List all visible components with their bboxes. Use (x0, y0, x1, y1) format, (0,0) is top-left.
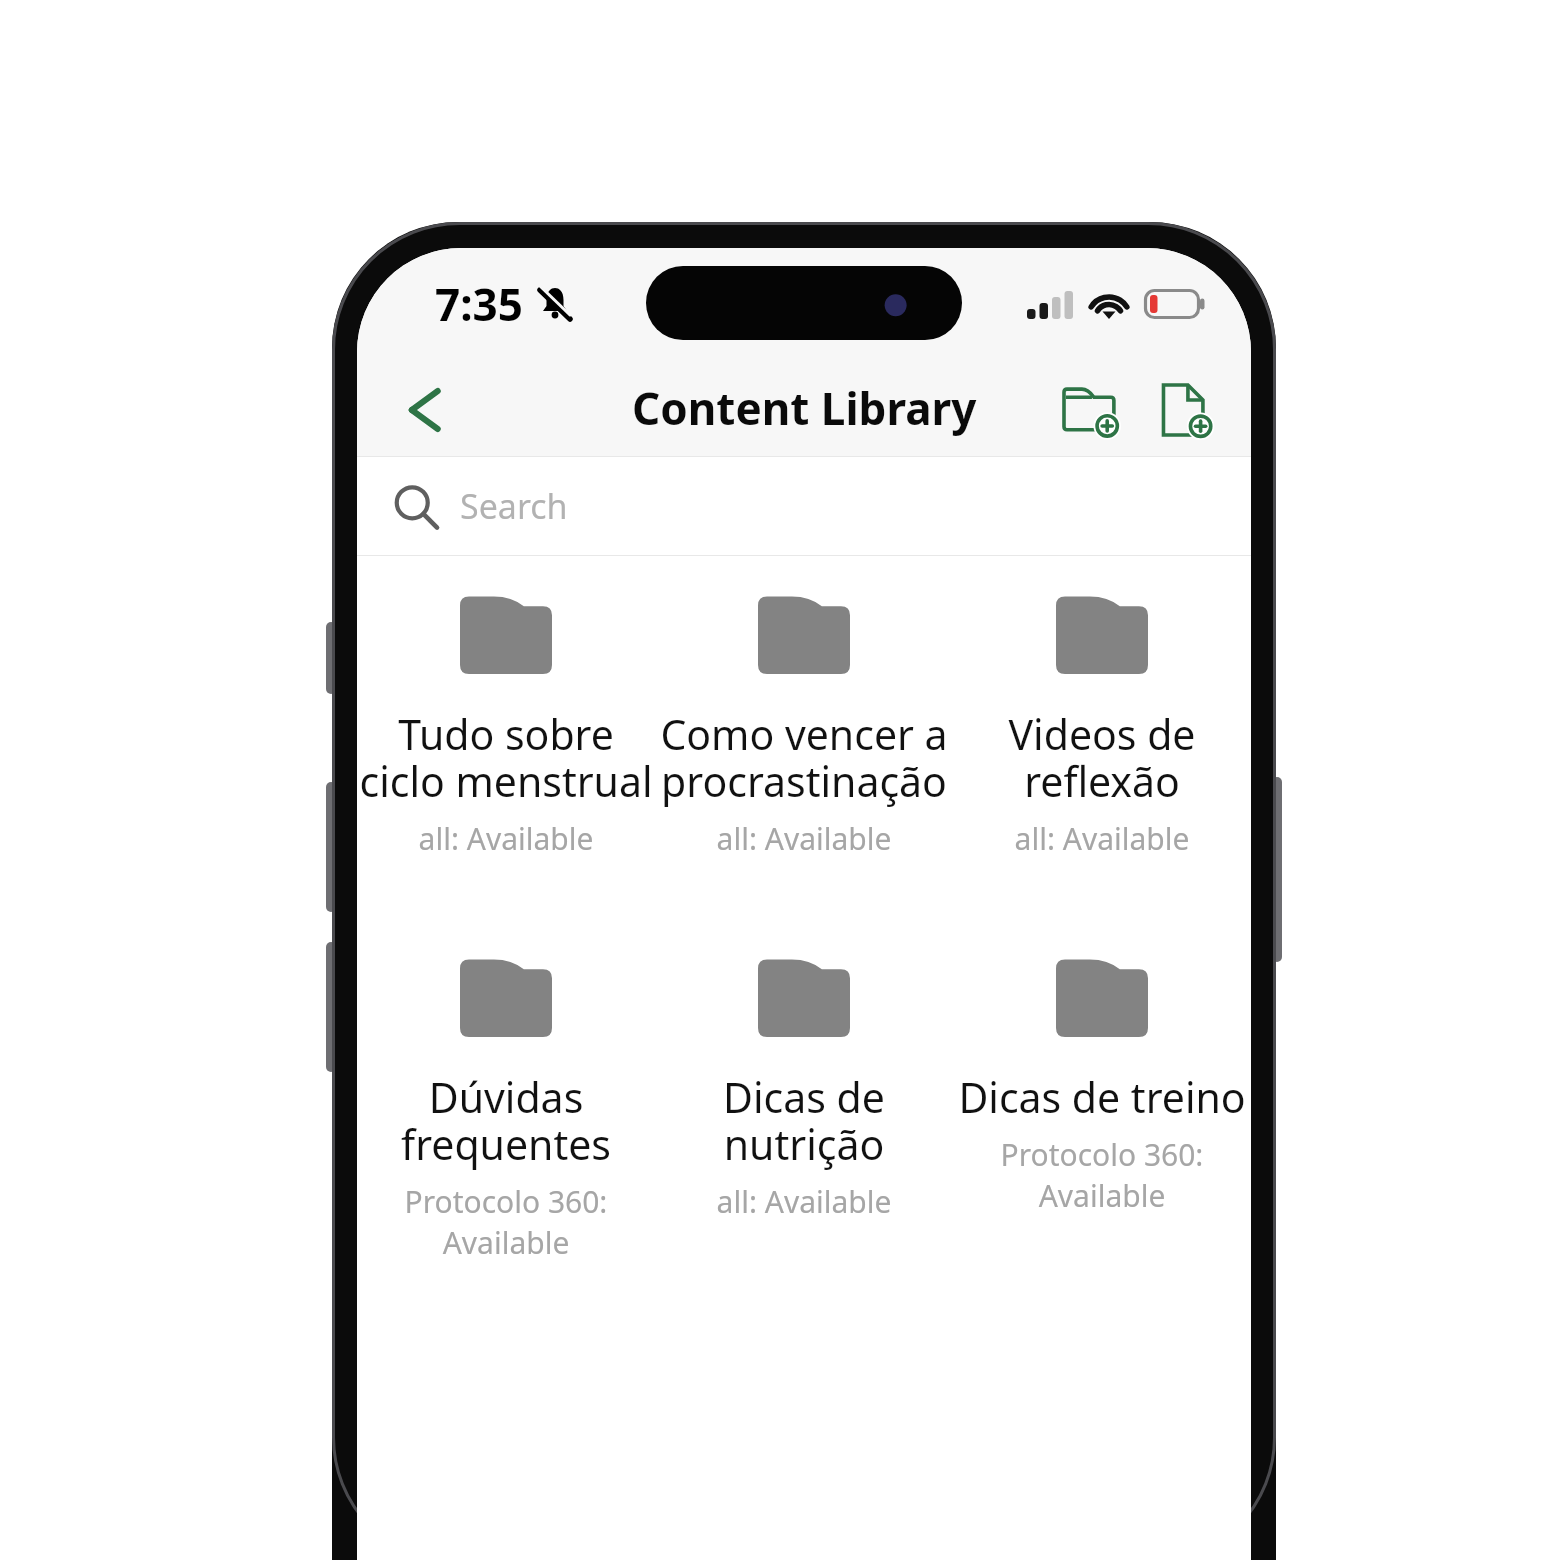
button[interactable]: Videos de reflexão (953, 588, 1251, 859)
staticText: Protocolo 360: Available (359, 1181, 653, 1263)
button[interactable]: Dúvidas frequentes (357, 951, 655, 1263)
staticText: all: Available (657, 818, 951, 859)
staticText: Protocolo 360: Available (955, 1134, 1249, 1216)
staticText: Tudo sobre ciclo menstrual (359, 706, 653, 809)
staticText: Search (460, 483, 568, 529)
staticText: Dicas de treino (955, 1069, 1249, 1125)
staticText: Dicas de nutrição (657, 1069, 951, 1172)
staticText: Como vencer a procrastinação (657, 706, 951, 809)
button[interactable]: Dicas de treino (953, 951, 1251, 1216)
button[interactable]: Dicas de nutrição (655, 951, 953, 1222)
button[interactable]: New folder (1053, 370, 1133, 450)
button[interactable]: Search (357, 457, 1251, 555)
button[interactable]: New file (1149, 370, 1229, 450)
staticText: Content Library (632, 378, 977, 438)
staticText: all: Available (359, 818, 653, 859)
staticText: all: Available (657, 1181, 951, 1222)
button[interactable]: Como vencer a procrastinação (655, 588, 953, 859)
button[interactable]: Back (383, 372, 459, 448)
staticText: all: Available (955, 818, 1249, 859)
staticText: Videos de reflexão (955, 706, 1249, 809)
button[interactable]: Tudo sobre ciclo menstrual (357, 588, 655, 859)
staticText: 7:35 (435, 274, 523, 334)
staticText: Dúvidas frequentes (359, 1069, 653, 1172)
